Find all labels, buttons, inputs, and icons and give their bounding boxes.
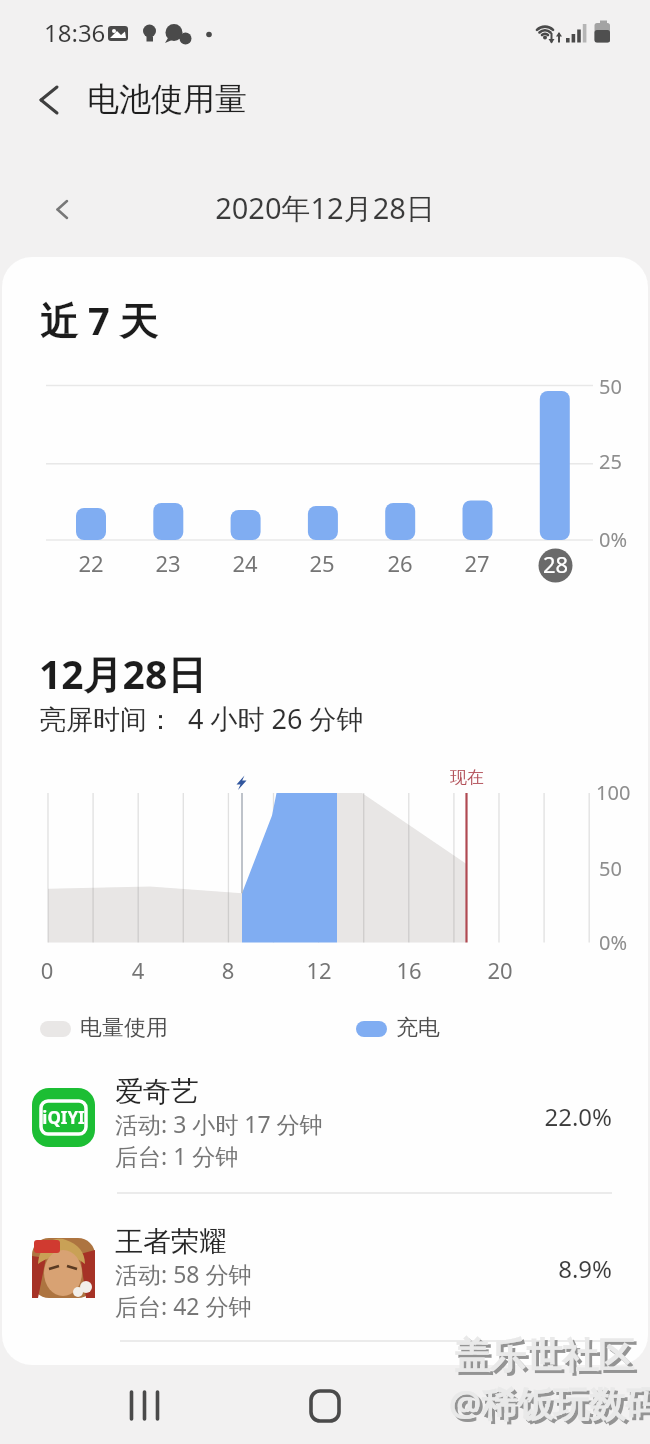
staticText: 活动: 3 小时 17 分钟 (115, 1108, 323, 1139)
staticText: 现在 (450, 767, 484, 788)
staticText: 25 (302, 548, 342, 578)
staticText: 王者荣耀 (115, 1224, 227, 1259)
staticText: 25 (599, 448, 622, 475)
staticText: 后台: 42 分钟 (115, 1290, 252, 1321)
staticText: 16 (389, 955, 429, 985)
staticText: 12 (299, 955, 339, 985)
staticText: 活动: 58 分钟 (115, 1258, 252, 1289)
staticText: 盖乐世社区 (457, 1336, 637, 1381)
staticText: 4 (118, 955, 158, 985)
staticText: 50 (599, 855, 622, 882)
staticText: 0 (27, 955, 67, 985)
button[interactable] (40, 186, 84, 230)
staticText: 近 7 天 (40, 294, 158, 346)
staticText: 后台: 1 分钟 (115, 1140, 239, 1171)
button[interactable] (293, 1380, 357, 1432)
staticText: 12月28日 (39, 647, 207, 700)
staticText: 18:36 (44, 16, 106, 49)
staticText: 0% (599, 526, 628, 553)
button[interactable] (16, 1072, 636, 1184)
staticText: 100 (596, 779, 631, 806)
staticText: 电池使用量 (87, 79, 247, 119)
button[interactable] (16, 1222, 636, 1334)
staticText: @稀饭玩数码 (449, 1379, 650, 1428)
staticText: @稀饭玩数码 (452, 1382, 650, 1431)
button[interactable] (474, 1380, 538, 1432)
staticText: 2020年12月28日 (0, 188, 650, 228)
staticText: 0% (599, 929, 628, 956)
staticText: 27 (457, 548, 497, 578)
staticText: 22.0% (500, 1100, 612, 1133)
staticText: 8.9% (500, 1252, 612, 1285)
staticText: 23 (148, 548, 188, 578)
staticText: 20 (480, 955, 520, 985)
staticText: 盖乐世社区 (454, 1333, 634, 1378)
staticText: 8 (208, 955, 248, 985)
staticText: 爱奇艺 (115, 1074, 199, 1109)
staticText: 24 (225, 548, 265, 578)
staticText: 亮屏时间： 4 小时 26 分钟 (39, 700, 364, 737)
staticText: 28 (535, 549, 576, 579)
staticText: 电量使用 (80, 1014, 168, 1042)
staticText: 充电 (396, 1014, 440, 1042)
staticText: 22 (71, 548, 111, 578)
staticText: iQIYI (41, 1106, 86, 1129)
button[interactable] (110, 1380, 174, 1432)
staticText: 26 (380, 548, 420, 578)
staticText: 50 (599, 373, 622, 400)
button[interactable] (30, 78, 74, 122)
